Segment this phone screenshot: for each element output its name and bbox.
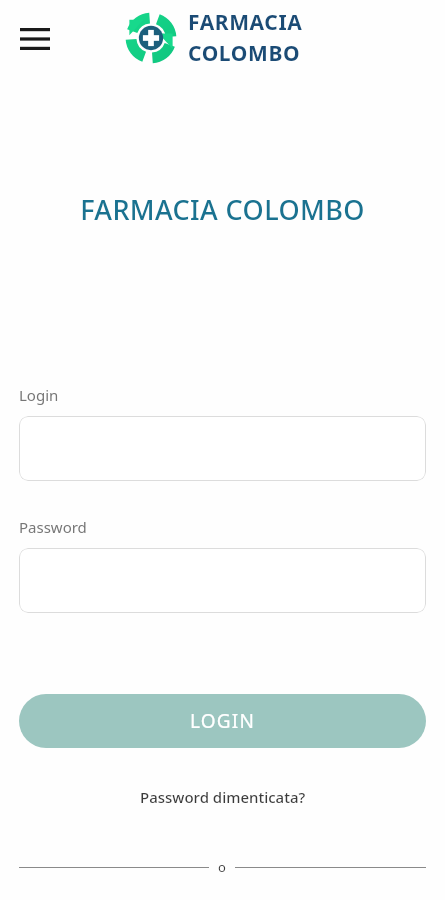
button[interactable]: Password input field: [19, 548, 426, 613]
button[interactable]: LOGIN: [19, 694, 426, 748]
staticText: Password dimenticata?: [140, 787, 306, 807]
staticText: Login: [19, 385, 59, 405]
button[interactable]: Password dimenticata?: [130, 782, 316, 812]
staticText: FARMACIA: [188, 8, 303, 37]
button[interactable]: Login input field: [19, 416, 426, 481]
staticText: Password: [19, 517, 87, 537]
button[interactable]: Open navigation menu: [12, 20, 58, 58]
staticText: COLOMBO: [188, 39, 301, 68]
staticText: LOGIN: [190, 708, 256, 734]
staticText: o: [218, 858, 226, 876]
staticText: FARMACIA COLOMBO: [80, 191, 365, 228]
